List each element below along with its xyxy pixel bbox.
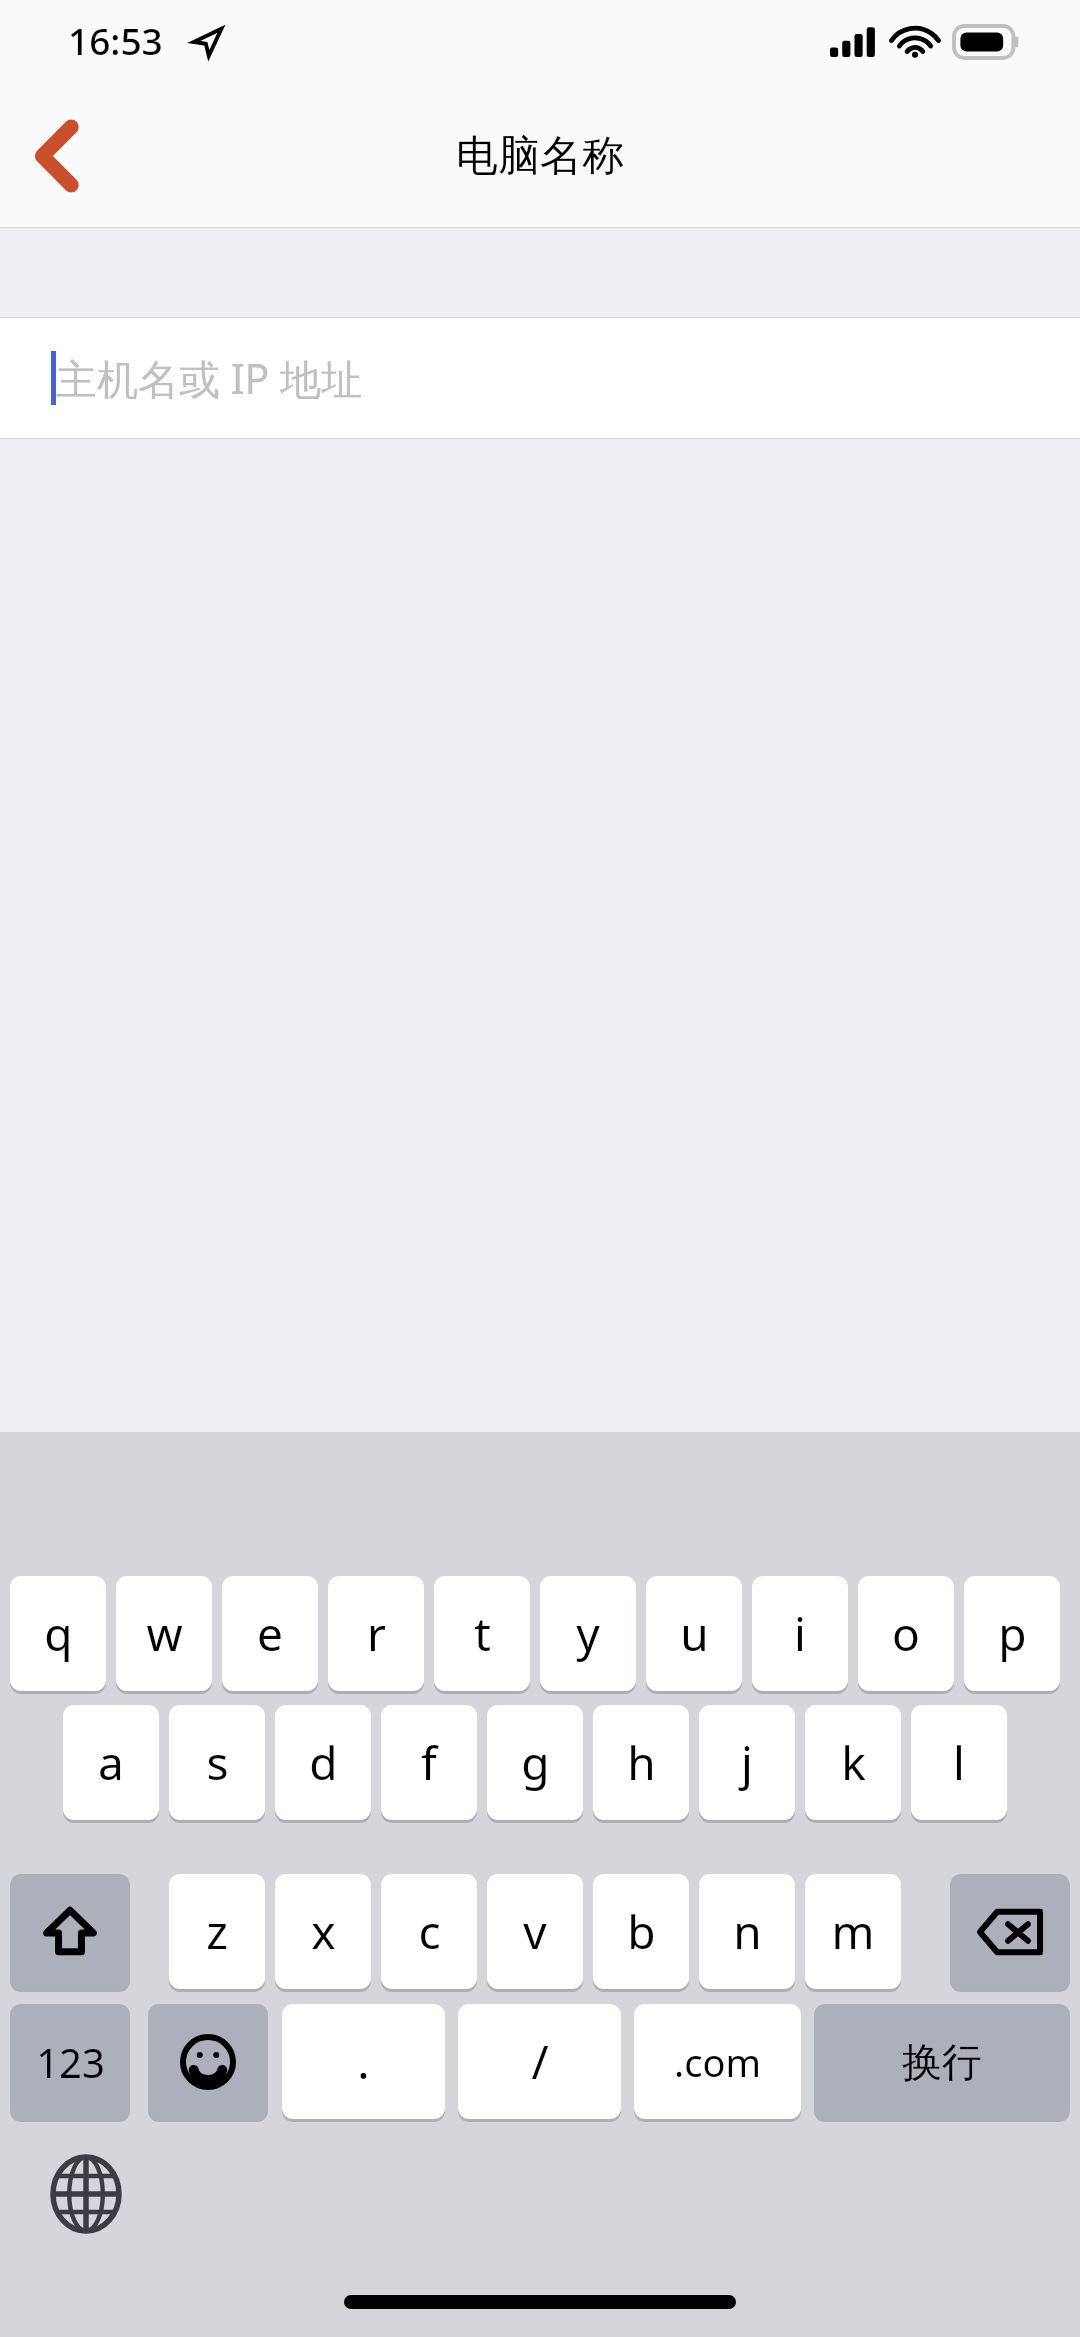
button[interactable]: w (116, 1576, 212, 1691)
staticText: d (309, 1731, 338, 1794)
button[interactable]: x (275, 1874, 371, 1989)
staticText: 主机名或 IP 地址 (56, 350, 363, 406)
staticText: b (627, 1900, 656, 1963)
staticText: s (206, 1731, 229, 1794)
button[interactable]: 主机名或 IP 地址 (0, 318, 1080, 438)
staticText: f (421, 1731, 437, 1794)
button[interactable]: j (699, 1705, 795, 1820)
staticText: z (206, 1900, 228, 1963)
button[interactable]: h (593, 1705, 689, 1820)
button[interactable]: Shift (10, 1874, 130, 1989)
button[interactable]: i (752, 1576, 848, 1691)
staticText: y (576, 1602, 600, 1665)
button[interactable]: s (169, 1705, 265, 1820)
button[interactable]: c (381, 1874, 477, 1989)
button[interactable]: 换行 (814, 2004, 1070, 2119)
staticText: o (892, 1602, 920, 1665)
staticText: / (531, 2030, 549, 2093)
button[interactable]: z (169, 1874, 265, 1989)
staticText: g (521, 1731, 550, 1794)
staticText: k (841, 1731, 866, 1794)
staticText: .com (674, 2036, 761, 2088)
staticText: c (418, 1900, 441, 1963)
staticText: p (998, 1602, 1027, 1665)
staticText: 换行 (902, 2037, 982, 2087)
staticText: l (953, 1731, 965, 1794)
button[interactable]: r (328, 1576, 424, 1691)
button[interactable]: d (275, 1705, 371, 1820)
button[interactable]: t (434, 1576, 530, 1691)
staticText: e (257, 1602, 283, 1665)
button[interactable]: o (858, 1576, 954, 1691)
button[interactable]: g (487, 1705, 583, 1820)
button[interactable]: k (805, 1705, 901, 1820)
staticText: x (311, 1900, 336, 1963)
button[interactable]: .com (634, 2004, 801, 2119)
staticText: 16:53 (68, 15, 163, 65)
button[interactable]: Backspace (950, 1874, 1070, 1989)
staticText: . (357, 2030, 370, 2093)
staticText: h (627, 1731, 656, 1794)
staticText: n (733, 1900, 762, 1963)
button[interactable]: u (646, 1576, 742, 1691)
staticText: v (523, 1900, 547, 1963)
button[interactable]: y (540, 1576, 636, 1691)
button[interactable]: q (10, 1576, 106, 1691)
button[interactable]: Back (0, 96, 112, 216)
button[interactable]: / (458, 2004, 621, 2119)
button[interactable]: Emoji (148, 2004, 268, 2119)
button[interactable]: b (593, 1874, 689, 1989)
button[interactable]: e (222, 1576, 318, 1691)
button[interactable]: m (805, 1874, 901, 1989)
button[interactable]: . (282, 2004, 445, 2119)
staticText: u (680, 1602, 709, 1665)
button[interactable]: Change keyboard (36, 2144, 136, 2244)
staticText: q (44, 1602, 73, 1665)
staticText: 123 (36, 2035, 105, 2089)
staticText: a (98, 1731, 124, 1794)
staticText: w (146, 1602, 183, 1665)
staticText: r (367, 1602, 386, 1665)
button[interactable]: a (63, 1705, 159, 1820)
staticText: i (794, 1602, 806, 1665)
staticText: 电脑名称 (456, 130, 624, 183)
button[interactable]: p (964, 1576, 1060, 1691)
button[interactable]: f (381, 1705, 477, 1820)
staticText: j (741, 1731, 753, 1794)
button[interactable]: n (699, 1874, 795, 1989)
staticText: t (474, 1602, 491, 1665)
button[interactable]: 123 (10, 2004, 130, 2119)
button[interactable]: l (911, 1705, 1007, 1820)
button[interactable]: v (487, 1874, 583, 1989)
staticText: m (831, 1900, 875, 1963)
